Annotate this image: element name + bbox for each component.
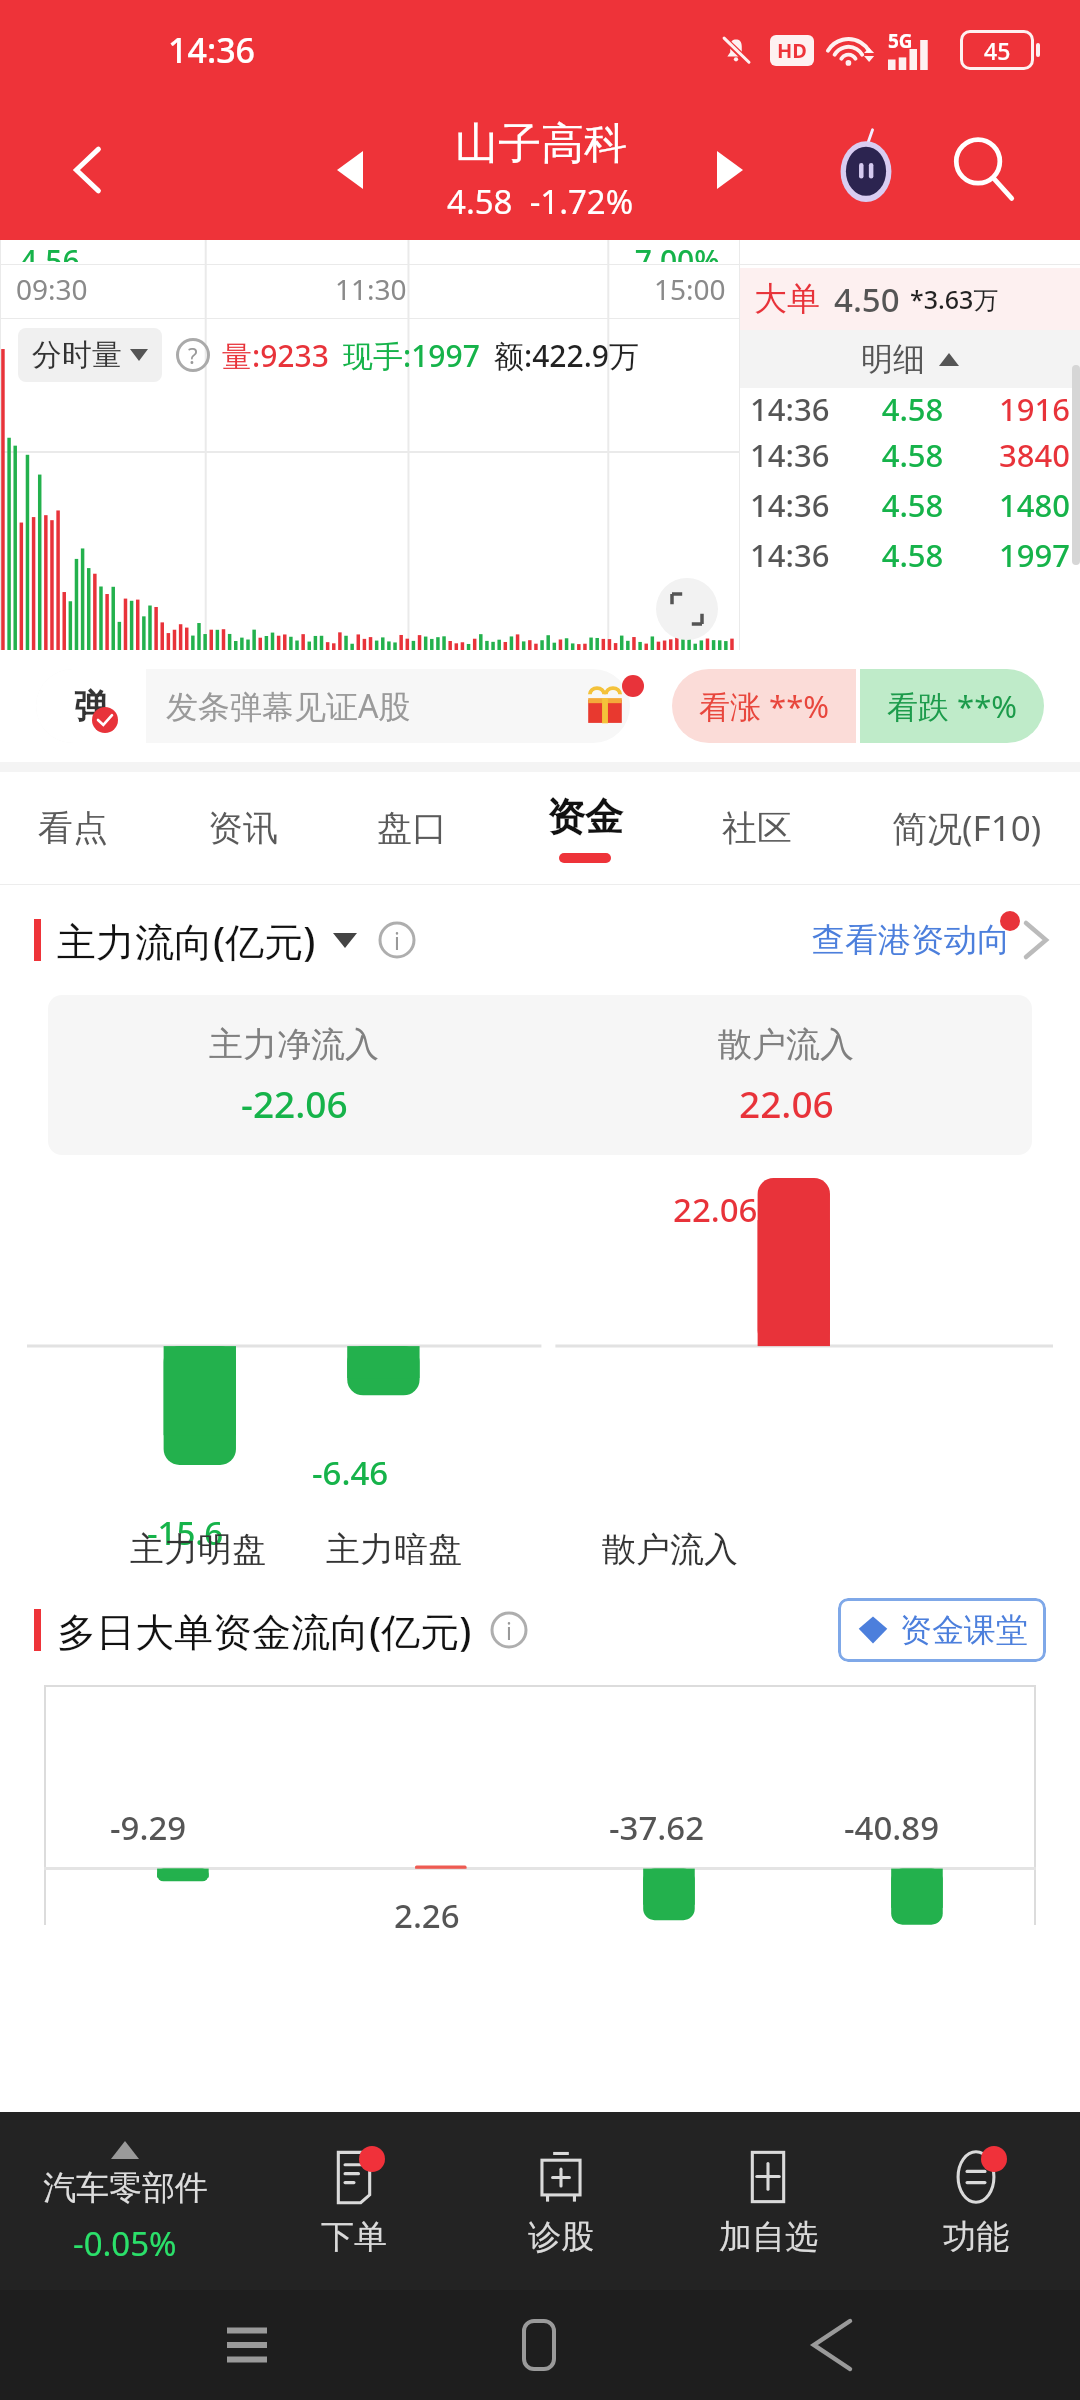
button[interactable]: Help bbox=[176, 338, 210, 372]
staticText: 主力流向(亿元) bbox=[57, 914, 316, 967]
staticText: 14:36 bbox=[168, 27, 256, 73]
staticText: 主力净流入 bbox=[209, 1023, 379, 1066]
staticText: -9.29 bbox=[110, 1805, 187, 1850]
button[interactable]: AI assistant bbox=[820, 124, 912, 216]
button[interactable]: 14:36 bbox=[750, 388, 1070, 430]
button[interactable]: Search bbox=[938, 124, 1030, 216]
button[interactable]: 诊股 bbox=[457, 2144, 664, 2258]
staticText: 额:422.9万 bbox=[494, 335, 639, 376]
staticText: ? bbox=[188, 340, 198, 370]
button[interactable]: 简况(F10) bbox=[880, 790, 1054, 866]
button[interactable]: Previous stock bbox=[316, 136, 384, 204]
button[interactable]: 查看港资动向 bbox=[812, 909, 1046, 971]
staticText: 加自选 bbox=[719, 2216, 818, 2258]
staticText: 4.58 bbox=[860, 388, 965, 430]
button[interactable]: 资金课堂 bbox=[838, 1598, 1046, 1662]
staticText: 45 bbox=[984, 35, 1011, 66]
button[interactable]: 盘口 bbox=[365, 792, 459, 864]
button[interactable]: Switch bbox=[330, 925, 360, 955]
staticText: -40.89 bbox=[844, 1805, 940, 1850]
staticText: 下单 bbox=[321, 2216, 387, 2258]
staticText: 14:36 bbox=[750, 434, 860, 476]
staticText: -6.46 bbox=[312, 1450, 389, 1495]
staticText: 查看港资动向 bbox=[812, 919, 1010, 961]
button[interactable]: Back bbox=[48, 130, 128, 210]
staticText: 14:36 bbox=[750, 388, 860, 430]
staticText: 4.56 bbox=[20, 240, 80, 262]
staticText: -37.62 bbox=[609, 1805, 705, 1850]
button[interactable]: 资金 bbox=[535, 779, 635, 877]
staticText: i bbox=[506, 1615, 512, 1646]
button[interactable]: 社区 bbox=[710, 792, 804, 864]
staticText: -7.00% bbox=[625, 240, 720, 262]
staticText: 4.58 bbox=[860, 434, 965, 476]
staticText: i bbox=[394, 925, 400, 956]
button[interactable]: 汽车零部件 bbox=[0, 2137, 250, 2266]
staticText: 资金 bbox=[547, 793, 623, 841]
staticText: 分时量 bbox=[32, 336, 122, 374]
staticText: *3.63万 bbox=[910, 282, 999, 316]
staticText: 量:9233 bbox=[222, 335, 329, 376]
staticText: 看跌 **% bbox=[887, 685, 1017, 727]
staticText: 诊股 bbox=[528, 2216, 594, 2258]
button[interactable]: Recents bbox=[202, 2300, 292, 2390]
button[interactable]: 加自选 bbox=[664, 2144, 872, 2258]
staticText: 散户流入 bbox=[602, 1528, 738, 1571]
staticText: 2.26 bbox=[394, 1893, 460, 1938]
staticText: 功能 bbox=[943, 2216, 1009, 2258]
staticText: 看涨 **% bbox=[699, 685, 829, 727]
staticText: 明细 bbox=[861, 339, 925, 379]
button[interactable]: Info bbox=[490, 1611, 528, 1649]
staticText: -22.06 bbox=[241, 1078, 348, 1128]
staticText: 资金课堂 bbox=[900, 1610, 1028, 1650]
button[interactable]: Fullscreen bbox=[656, 578, 718, 640]
staticText: 4.58 bbox=[860, 484, 965, 526]
staticText: 09:30 bbox=[16, 270, 88, 308]
button[interactable]: 下单 bbox=[250, 2144, 457, 2258]
button[interactable]: 弹 bbox=[36, 669, 630, 743]
staticText: 4.58 -1.72% bbox=[447, 179, 634, 224]
staticText: 4.58 bbox=[860, 534, 965, 576]
staticText: 汽车零部件 bbox=[43, 2167, 208, 2209]
staticText: 发条弹幕见证A股 bbox=[166, 684, 411, 728]
button[interactable]: 明细 bbox=[740, 330, 1080, 388]
button[interactable]: 看点 bbox=[26, 792, 120, 864]
staticText: 主力明盘 bbox=[130, 1528, 266, 1571]
staticText: 看点 bbox=[38, 806, 108, 850]
button[interactable]: Home bbox=[494, 2300, 584, 2390]
staticText: 22.06 bbox=[739, 1078, 834, 1128]
staticText: 弹 bbox=[74, 685, 108, 728]
staticText: 1916 bbox=[965, 388, 1070, 430]
staticText: 14:36 bbox=[750, 534, 860, 576]
staticText: -15.6 bbox=[147, 1510, 224, 1555]
staticText: 山子高科 bbox=[455, 117, 627, 171]
button[interactable]: 资讯 bbox=[196, 792, 290, 864]
button[interactable]: Next stock bbox=[696, 136, 764, 204]
staticText: 4.50 bbox=[834, 277, 900, 322]
staticText: 散户流入 bbox=[718, 1023, 854, 1066]
staticText: 3840 bbox=[965, 434, 1070, 476]
button[interactable]: 14:36 bbox=[750, 430, 1070, 480]
button[interactable]: 14:36 bbox=[750, 480, 1070, 530]
staticText: 1480 bbox=[965, 484, 1070, 526]
staticText: 主力暗盘 bbox=[326, 1528, 462, 1571]
staticText: 11:30 bbox=[335, 270, 407, 308]
staticText: 多日大单资金流向(亿元) bbox=[57, 1604, 472, 1657]
staticText: 盘口 bbox=[377, 806, 447, 850]
button[interactable]: 看涨 **% bbox=[672, 669, 856, 743]
staticText: HD bbox=[777, 37, 807, 64]
staticText: 14:36 bbox=[750, 484, 860, 526]
staticText: 22.06 bbox=[673, 1187, 758, 1232]
staticText: 15:00 bbox=[654, 270, 726, 308]
button[interactable]: 14:36 bbox=[750, 530, 1070, 580]
button[interactable]: 功能 bbox=[872, 2144, 1080, 2258]
button[interactable]: Back bbox=[787, 2300, 877, 2390]
staticText: 5G bbox=[888, 28, 913, 54]
staticText: 资讯 bbox=[208, 806, 278, 850]
button[interactable]: Info bbox=[378, 921, 416, 959]
button[interactable]: 分时量 bbox=[18, 328, 162, 382]
button[interactable]: 看跌 **% bbox=[860, 669, 1044, 743]
staticText: -0.05% bbox=[73, 2221, 177, 2266]
staticText: 1997 bbox=[965, 534, 1070, 576]
staticText: 社区 bbox=[722, 806, 792, 850]
